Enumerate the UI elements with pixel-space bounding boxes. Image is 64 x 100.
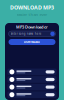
button[interactable] — [7, 76, 57, 83]
staticText: MP3 Downloader — [16, 24, 48, 30]
staticText: Enter song name here — [11, 32, 42, 35]
button[interactable] — [7, 69, 57, 75]
staticText: easier than ever — [16, 12, 47, 17]
button[interactable] — [7, 84, 57, 90]
staticText: DOWNLOAD — [24, 40, 40, 44]
staticText: DOWNLOAD MP3 — [10, 4, 54, 11]
button[interactable]: DOWNLOAD — [8, 39, 55, 45]
button[interactable] — [7, 91, 57, 98]
